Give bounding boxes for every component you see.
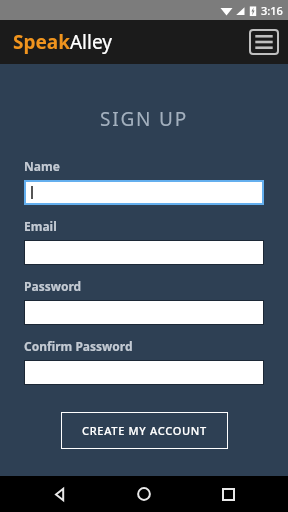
button[interactable]: Recents bbox=[212, 478, 244, 510]
staticText: Confirm Password bbox=[24, 338, 133, 354]
staticText: Name bbox=[24, 158, 60, 174]
button[interactable] bbox=[24, 180, 264, 205]
button[interactable] bbox=[24, 360, 264, 385]
button[interactable] bbox=[24, 300, 264, 325]
button[interactable]: Home bbox=[128, 478, 160, 510]
button[interactable]: Menu bbox=[249, 29, 279, 55]
staticText: SpeakAlley bbox=[13, 29, 112, 55]
staticText: SIGN UP bbox=[0, 106, 288, 132]
staticText: 3:16 bbox=[261, 3, 283, 18]
staticText: Password bbox=[24, 278, 82, 294]
button[interactable]: CREATE MY ACCOUNT bbox=[61, 412, 228, 449]
button[interactable] bbox=[24, 240, 264, 265]
button[interactable]: Back bbox=[44, 478, 76, 510]
staticText: CREATE MY ACCOUNT bbox=[82, 423, 207, 438]
staticText: Email bbox=[24, 218, 57, 234]
